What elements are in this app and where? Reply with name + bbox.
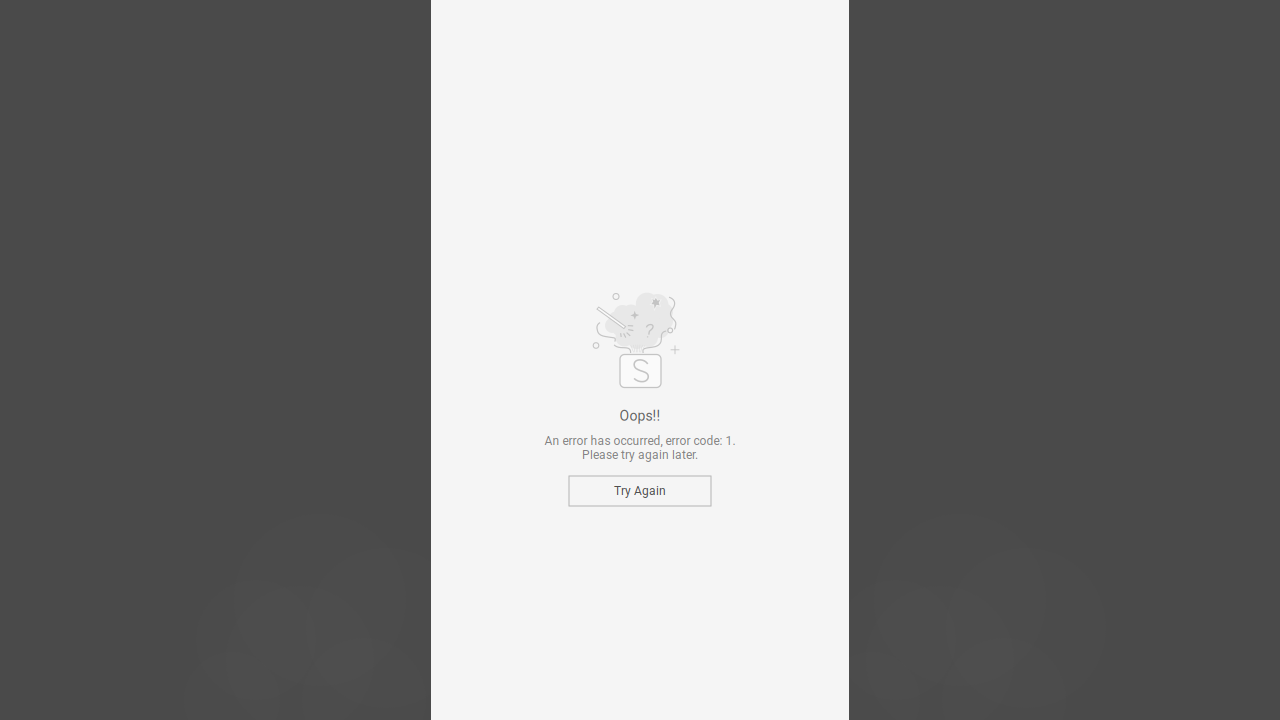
staticText: Please try again later. <box>582 448 698 462</box>
button[interactable]: Try Again <box>569 476 711 506</box>
staticText: An error has occurred, error code: 1. <box>544 434 735 448</box>
staticText: Oops!! <box>619 408 660 424</box>
staticText: Try Again <box>614 484 666 498</box>
